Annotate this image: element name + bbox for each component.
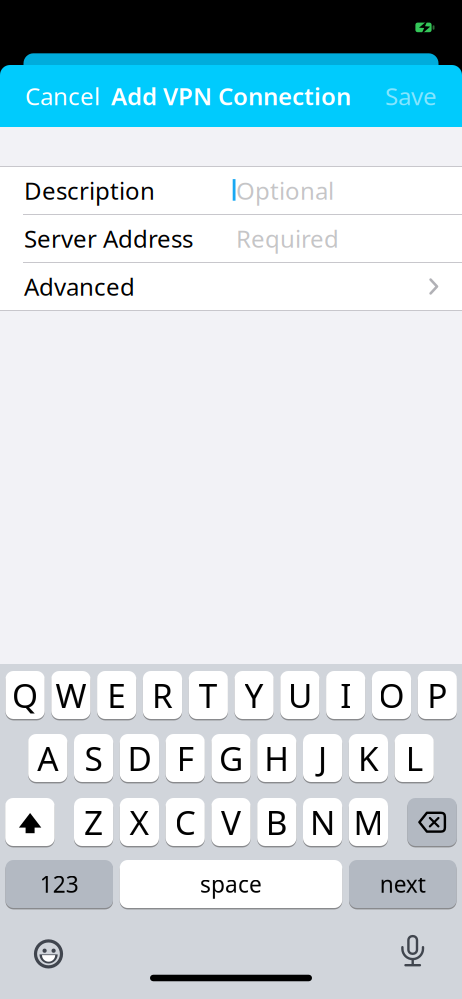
button[interactable]: W — [51, 671, 90, 719]
staticText: Cancel — [25, 80, 100, 112]
button[interactable]: Z — [74, 798, 113, 846]
staticText: G — [219, 736, 243, 780]
button[interactable]: R — [143, 671, 182, 719]
staticText: C — [175, 800, 196, 844]
button[interactable]: 123 — [5, 860, 113, 908]
button[interactable]: A — [28, 734, 67, 782]
staticText: P — [427, 673, 447, 717]
button[interactable]: G — [211, 734, 251, 782]
staticText: M — [353, 800, 383, 844]
button[interactable]: Server Address — [0, 214, 462, 262]
staticText: K — [358, 736, 379, 780]
button[interactable] — [396, 935, 430, 969]
staticText: B — [266, 800, 288, 844]
button[interactable]: J — [303, 734, 342, 782]
button[interactable]: Cancel — [25, 76, 145, 116]
button[interactable]: L — [395, 734, 434, 782]
button[interactable]: Y — [234, 671, 274, 719]
staticText: L — [406, 736, 423, 780]
button[interactable]: V — [211, 798, 251, 846]
button[interactable]: Save — [317, 76, 437, 116]
button[interactable]: P — [418, 671, 457, 719]
staticText: Required — [236, 223, 339, 254]
button[interactable]: C — [166, 798, 205, 846]
button[interactable]: space — [120, 860, 342, 908]
button[interactable]: H — [257, 734, 296, 782]
button[interactable]: Advanced — [0, 262, 462, 310]
button[interactable]: F — [166, 734, 205, 782]
staticText: Z — [84, 800, 103, 844]
button[interactable] — [32, 938, 64, 970]
staticText: Add VPN Connection — [111, 80, 351, 112]
button[interactable]: Q — [5, 671, 45, 719]
button[interactable]: T — [189, 671, 228, 719]
staticText: T — [199, 673, 218, 717]
button[interactable]: M — [349, 798, 388, 846]
staticText: Server Address — [24, 223, 193, 254]
staticText: Q — [12, 673, 38, 717]
button[interactable]: O — [372, 671, 411, 719]
staticText: space — [200, 869, 262, 899]
staticText: V — [221, 800, 241, 844]
button[interactable]: U — [280, 671, 319, 719]
button[interactable]: D — [120, 734, 159, 782]
staticText: R — [152, 673, 173, 717]
button[interactable]: next — [349, 860, 456, 908]
staticText: A — [37, 736, 58, 780]
button[interactable]: X — [120, 798, 159, 846]
staticText: Y — [245, 673, 264, 717]
staticText: Advanced — [24, 271, 135, 302]
staticText: Save — [385, 80, 437, 112]
button[interactable]: I — [326, 671, 365, 719]
button[interactable]: S — [74, 734, 113, 782]
staticText: 123 — [40, 869, 79, 899]
button[interactable]: Description — [0, 166, 462, 214]
staticText: D — [127, 736, 151, 780]
staticText: N — [310, 800, 335, 844]
staticText: O — [378, 673, 404, 717]
button[interactable]: E — [97, 671, 136, 719]
staticText: I — [340, 673, 351, 717]
button[interactable] — [5, 798, 55, 846]
staticText: U — [288, 673, 312, 717]
staticText: F — [177, 736, 194, 780]
staticText: H — [264, 736, 289, 780]
staticText: S — [85, 736, 103, 780]
staticText: next — [380, 869, 426, 899]
button[interactable]: K — [349, 734, 388, 782]
staticText: Optional — [236, 175, 334, 206]
staticText: X — [129, 800, 149, 844]
button[interactable]: N — [303, 798, 342, 846]
button[interactable]: B — [257, 798, 296, 846]
staticText: E — [107, 673, 126, 717]
staticText: J — [318, 736, 327, 780]
staticText: W — [55, 673, 86, 717]
button[interactable] — [407, 798, 457, 846]
staticText: Description — [24, 175, 155, 206]
